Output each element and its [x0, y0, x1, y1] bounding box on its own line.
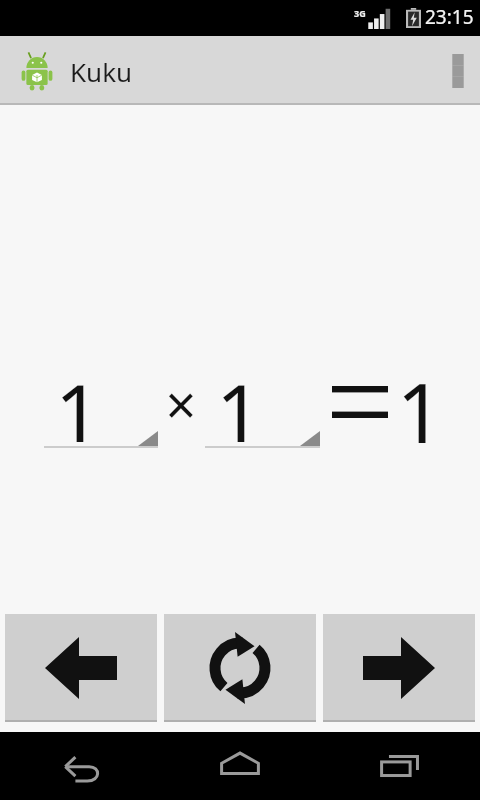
staticText: 23:15 — [425, 4, 474, 30]
staticText: × — [161, 367, 201, 441]
button[interactable]: Shuffle — [164, 614, 316, 722]
staticText: 3G — [354, 7, 366, 19]
button[interactable]: Select number — [205, 363, 320, 448]
button[interactable]: Next — [323, 614, 475, 722]
staticText: 1 — [396, 355, 444, 467]
button[interactable]: Home — [160, 732, 320, 800]
staticText: 1 — [213, 357, 265, 442]
button[interactable]: More options — [436, 36, 480, 105]
button[interactable]: Previous — [5, 614, 157, 722]
staticText: Kuku — [70, 54, 133, 89]
staticText: 1 — [52, 357, 104, 442]
button[interactable]: Recent apps — [320, 732, 480, 800]
button[interactable]: Select number — [44, 363, 158, 448]
button[interactable]: Back — [0, 732, 160, 800]
